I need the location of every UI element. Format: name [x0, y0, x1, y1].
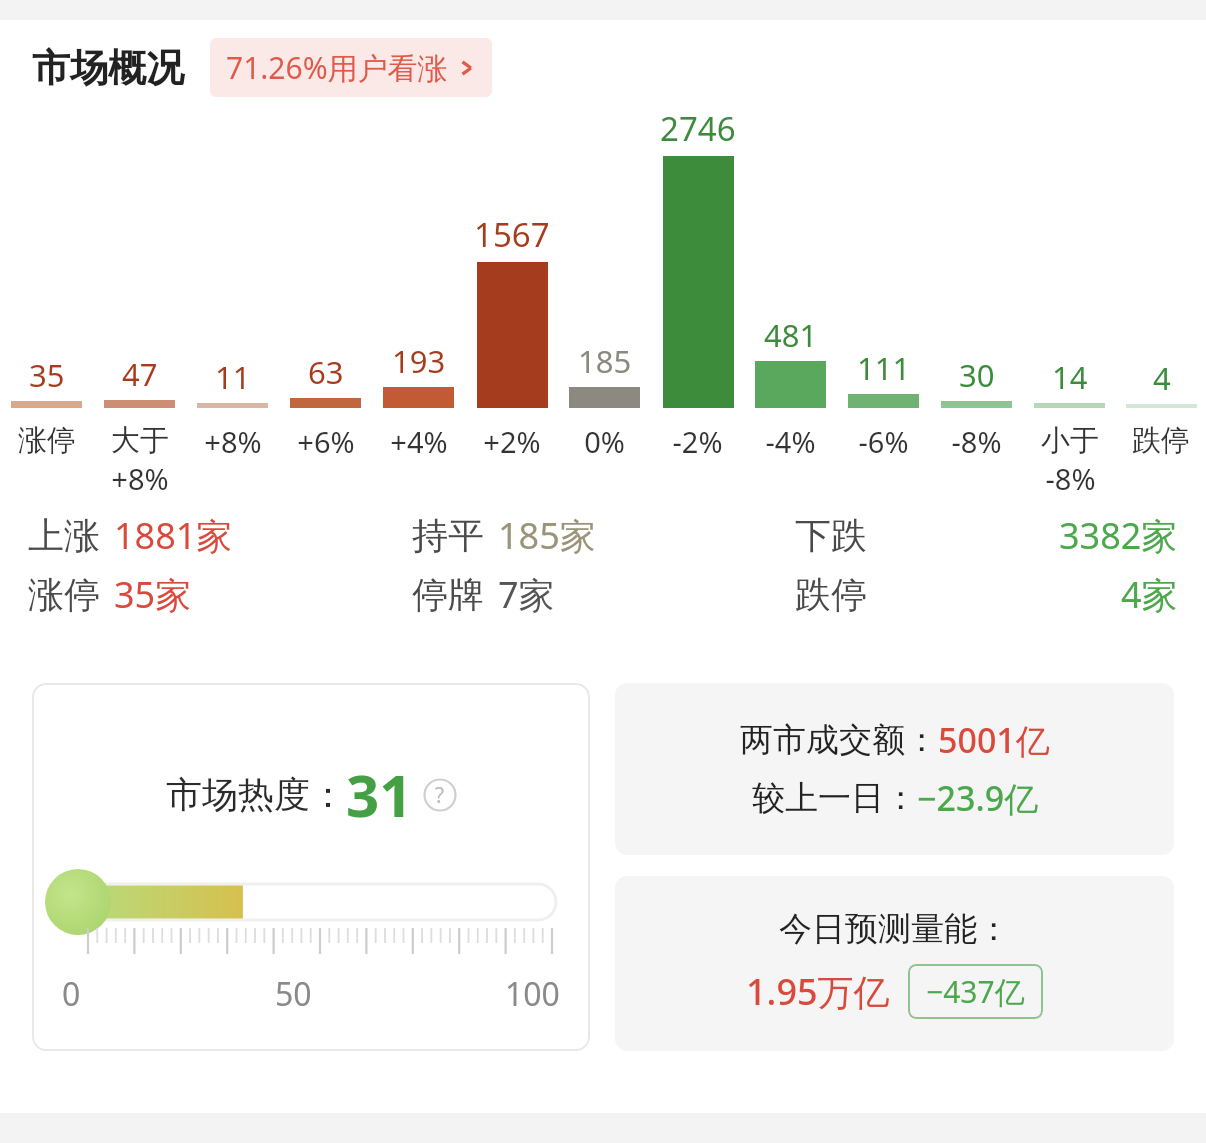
staticText: 4: [1153, 357, 1171, 399]
staticText: 0: [62, 972, 81, 1016]
staticText: 5001亿: [938, 717, 1050, 763]
staticText: 1567: [474, 212, 550, 257]
staticText: -2%: [672, 422, 723, 461]
staticText: 市场热度：: [166, 772, 346, 817]
staticText: 71.26%用户看涨: [226, 47, 448, 88]
staticText: +4%: [390, 422, 448, 461]
staticText: +6%: [297, 422, 355, 461]
staticText: −437亿: [926, 971, 1025, 1012]
staticText: -8%: [951, 422, 1002, 461]
staticText: 63: [308, 351, 344, 393]
staticText: ?: [435, 781, 445, 810]
button[interactable]: 今日预测量能：: [615, 876, 1174, 1051]
button[interactable]: 两市成交额：: [615, 683, 1174, 855]
staticText: 35: [29, 354, 65, 396]
staticText: 481: [764, 314, 818, 356]
button[interactable]: 帮助: [423, 778, 457, 812]
staticText: 3382家: [1059, 511, 1178, 560]
staticText: +2%: [483, 422, 541, 461]
staticText: 大于: [111, 422, 169, 459]
staticText: 185家: [498, 511, 596, 560]
staticText: 14: [1052, 356, 1088, 398]
staticText: 111: [857, 347, 911, 389]
staticText: -4%: [765, 422, 816, 461]
staticText: 市场概况: [32, 44, 184, 92]
staticText: 涨停: [28, 572, 100, 617]
staticText: -8%: [1045, 459, 1096, 497]
staticText: 185: [578, 340, 632, 382]
staticText: -6%: [858, 422, 909, 461]
staticText: 上涨: [28, 513, 100, 558]
staticText: 11: [215, 356, 251, 398]
staticText: 193: [392, 340, 446, 382]
staticText: 跌停: [795, 572, 867, 617]
staticText: 1.95万亿: [746, 967, 890, 1016]
staticText: 50: [275, 972, 312, 1016]
button[interactable]: 市场热度：: [32, 683, 590, 1051]
staticText: 2746: [660, 106, 736, 151]
staticText: 4家: [1121, 570, 1178, 619]
staticText: 较上一日：: [752, 777, 917, 819]
staticText: 47: [122, 353, 158, 395]
staticText: 小于: [1041, 422, 1099, 459]
staticText: 31: [346, 755, 413, 834]
button[interactable]: 71.26%用户看涨: [210, 38, 492, 97]
staticText: +8%: [111, 459, 169, 497]
staticText: 30: [959, 354, 995, 396]
staticText: 1881家: [114, 511, 233, 560]
staticText: 两市成交额：: [740, 719, 938, 761]
staticText: 下跌: [795, 513, 867, 558]
staticText: 持平: [412, 513, 484, 558]
staticText: 0%: [584, 422, 625, 461]
staticText: 涨停: [18, 422, 76, 459]
staticText: 跌停: [1132, 422, 1190, 459]
staticText: 100: [505, 972, 560, 1016]
staticText: −23.9亿: [917, 775, 1039, 821]
staticText: +8%: [204, 422, 262, 461]
staticText: 今日预测量能：: [779, 908, 1010, 950]
staticText: 7家: [498, 570, 555, 619]
staticText: 停牌: [412, 572, 484, 617]
staticText: 35家: [114, 570, 192, 619]
